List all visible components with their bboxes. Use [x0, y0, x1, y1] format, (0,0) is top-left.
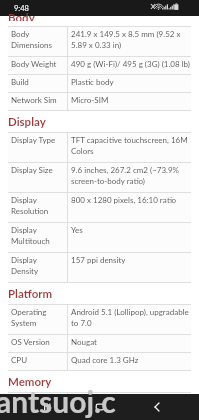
staticText: Display Type: [11, 135, 56, 145]
staticText: Display Density: [11, 255, 63, 276]
staticText: 9:48: [14, 4, 29, 13]
button[interactable]: Display Density: [8, 253, 191, 282]
staticText: 800 x 1280 pixels, 16:10 ratio: [71, 195, 177, 205]
button[interactable]: Build: [8, 75, 191, 92]
staticText: Build: [11, 77, 29, 87]
button[interactable]: Body Weight: [8, 57, 191, 74]
button[interactable]: CPU: [8, 353, 191, 370]
button[interactable]: Display Type: [8, 133, 191, 162]
staticText: Yes: [71, 225, 83, 235]
staticText: antsuoj.c: [0, 383, 116, 419]
button[interactable]: Display Multitouch: [8, 223, 191, 252]
button[interactable]: Display Size: [8, 163, 191, 192]
staticText: OS Version: [11, 337, 50, 347]
staticText: Operating System: [11, 307, 63, 328]
button[interactable]: Body Dimensions: [8, 27, 191, 56]
button[interactable]: Operating System: [8, 305, 191, 334]
staticText: Nougat: [71, 337, 97, 347]
staticText: Body Weight: [11, 59, 57, 69]
button[interactable]: OS Version: [8, 335, 191, 352]
staticText: TFT capacitive touchscreen, 16M Colors: [71, 135, 190, 156]
staticText: Plastic body: [71, 77, 114, 87]
button[interactable]: Back: [133, 394, 199, 420]
staticText: Memory: [8, 375, 52, 389]
staticText: Display Multitouch: [11, 225, 63, 246]
button[interactable]: Memory: [8, 393, 191, 394]
staticText: Display Resolution: [11, 195, 63, 216]
staticText: Display: [8, 115, 46, 129]
button[interactable]: Home: [67, 394, 133, 420]
button[interactable]: Display Resolution: [8, 193, 191, 222]
staticText: Body: [8, 11, 35, 21]
staticText: 241.9 x 149.5 x 8.5 mm (9.52 x 5.89 x 0.…: [71, 29, 190, 50]
staticText: Platform: [8, 287, 53, 301]
staticText: Micro-SIM: [71, 95, 109, 105]
staticText: Body Dimensions: [11, 29, 63, 50]
staticText: 9.6 inches, 267.2 cm2 (~73.9% screen-to-…: [71, 165, 190, 186]
staticText: 490 g (Wi-Fi)/ 495 g (3G) (1.08 lb): [71, 59, 190, 69]
staticText: CPU: [11, 355, 28, 365]
staticText: Display Size: [11, 165, 53, 175]
button[interactable]: Network Sim: [8, 93, 191, 110]
staticText: Network Sim: [11, 95, 57, 105]
button[interactable]: Recents: [0, 394, 66, 420]
staticText: 157 ppi density: [71, 255, 126, 265]
staticText: Quad core 1.3 GHz: [71, 355, 139, 365]
staticText: Android 5.1 (Lollipop), upgradable to 7.…: [71, 307, 190, 328]
